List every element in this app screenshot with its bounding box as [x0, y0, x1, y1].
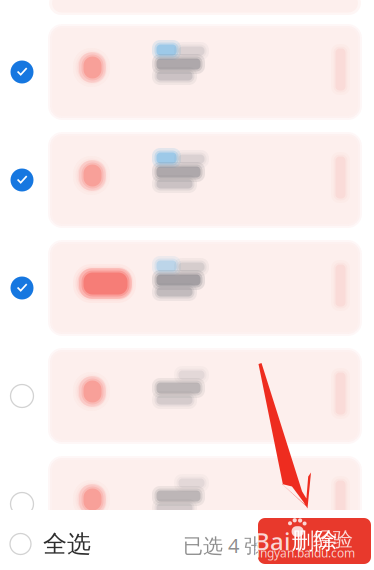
- button[interactable]: 选择: [0, 482, 44, 526]
- button[interactable]: 取消选择: [0, 266, 44, 310]
- staticText: 经验: [313, 527, 353, 552]
- button[interactable]: 删除: [258, 518, 371, 564]
- button[interactable]: 取消选择: [0, 158, 44, 202]
- staticText: jingyan.baidu.com: [254, 545, 355, 561]
- staticText: 全选: [43, 529, 91, 559]
- staticText: 删除: [291, 527, 337, 555]
- button[interactable]: 选择: [0, 374, 44, 418]
- staticText: Bai: [254, 525, 290, 557]
- button[interactable]: 取消选择: [0, 50, 44, 94]
- button[interactable]: 全选: [0, 521, 105, 567]
- staticText: 已选 4 张: [183, 532, 264, 559]
